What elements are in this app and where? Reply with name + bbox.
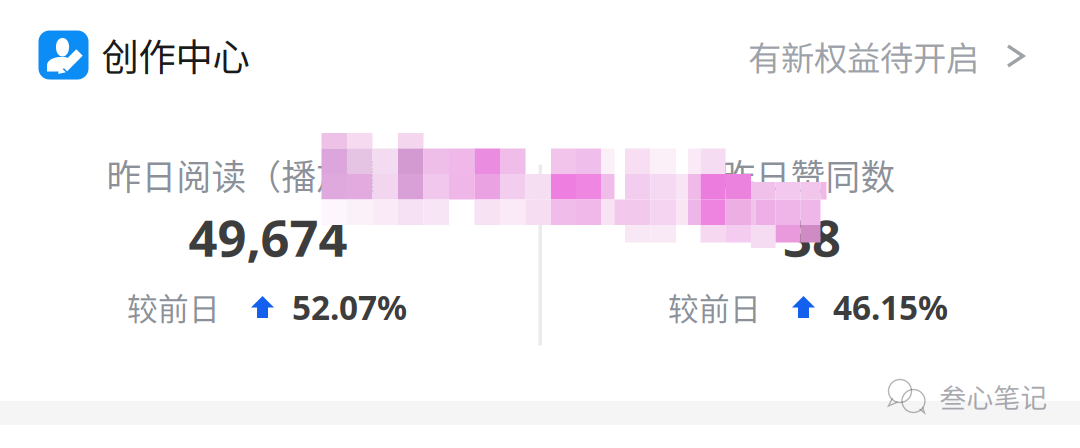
staticText: 38: [783, 203, 841, 271]
staticText: 较前日: [127, 285, 220, 329]
staticText: 昨日阅读（播放量）: [106, 150, 421, 200]
staticText: 昨日赞同数: [720, 150, 895, 200]
button[interactable]: 有新权益待开启: [748, 31, 1026, 81]
staticText: 46.15%: [833, 285, 948, 329]
staticText: 较前日: [668, 285, 761, 329]
button[interactable]: 创作中心: [38, 26, 251, 84]
staticText: 49,674: [188, 203, 347, 271]
staticText: 52.07%: [292, 285, 407, 329]
staticText: 有新权益待开启: [748, 32, 979, 80]
staticText: 叁心笔记: [939, 377, 1047, 415]
staticText: 创作中心: [101, 28, 249, 82]
